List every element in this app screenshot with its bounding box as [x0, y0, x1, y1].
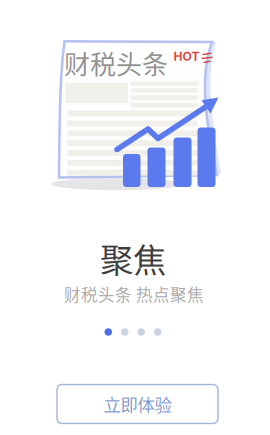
- staticText: 立即体验: [103, 391, 171, 417]
- staticText: 财税头条 热点聚焦: [64, 282, 204, 306]
- staticText: 聚焦: [100, 234, 166, 282]
- staticText: HOT: [173, 49, 199, 64]
- button[interactable]: 立即体验: [57, 384, 218, 423]
- staticText: 财税头条: [64, 44, 168, 82]
